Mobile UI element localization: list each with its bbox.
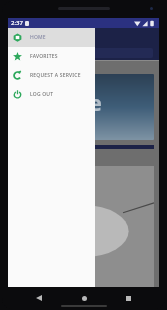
staticText: FAVORITES <box>30 53 58 60</box>
button[interactable]: Back <box>32 291 46 305</box>
button[interactable]: LOG OUT <box>8 85 95 104</box>
button[interactable]: Recent apps <box>121 291 135 305</box>
staticText: LOG OUT <box>30 91 54 98</box>
staticText: REQUEST A SERVICE <box>30 72 81 79</box>
staticText: 2:37 <box>11 19 23 27</box>
button[interactable]: REQUEST A SERVICE <box>8 66 95 85</box>
button[interactable]: Home <box>77 291 91 305</box>
staticText: Patients <box>13 64 33 71</box>
staticText: the <box>65 87 102 117</box>
button[interactable]: HOME <box>8 28 95 47</box>
staticText: HOME <box>30 34 46 41</box>
button[interactable]: FAVORITES <box>8 47 95 66</box>
